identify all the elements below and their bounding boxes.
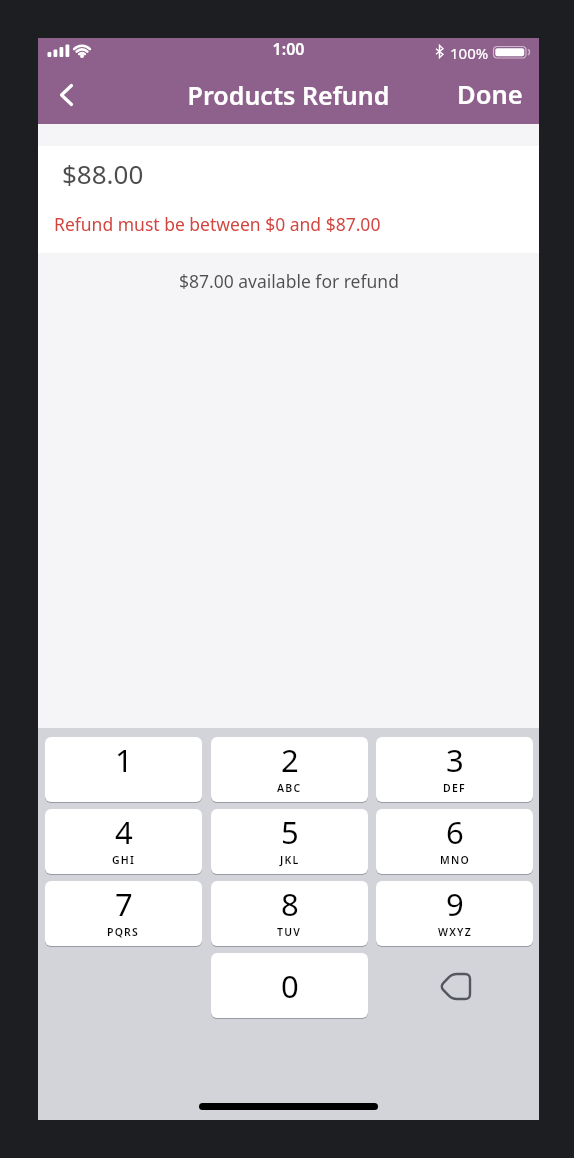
staticText: $87.00 available for refund — [179, 269, 399, 293]
button[interactable]: 8 — [211, 881, 368, 946]
staticText: PQRS — [107, 925, 140, 939]
button[interactable]: 9 — [376, 881, 533, 946]
staticText: 9 — [446, 883, 464, 925]
button[interactable]: 4 — [45, 809, 202, 874]
staticText: ABC — [277, 781, 302, 795]
staticText: DEF — [443, 781, 466, 795]
staticText: MNO — [440, 853, 470, 867]
button[interactable]: 1 — [45, 737, 202, 802]
staticText: 1:00 — [38, 38, 539, 60]
staticText: GHI — [112, 853, 136, 867]
staticText: $88.00 — [62, 156, 144, 191]
button[interactable] — [45, 73, 89, 117]
staticText: TUV — [277, 925, 302, 939]
staticText: 3 — [446, 739, 464, 781]
staticText: Refund must be between $0 and $87.00 — [54, 212, 381, 236]
staticText: 0 — [281, 965, 299, 1007]
staticText: 7 — [115, 883, 133, 925]
staticText: 100% — [450, 43, 489, 63]
staticText: WXYZ — [438, 925, 472, 939]
staticText: Products Refund — [38, 78, 539, 112]
staticText: 4 — [115, 811, 133, 853]
staticText: 6 — [446, 811, 464, 853]
staticText: JKL — [280, 853, 300, 867]
staticText: 2 — [281, 739, 299, 781]
button[interactable]: Done — [457, 72, 539, 116]
button[interactable]: 0 — [211, 953, 368, 1018]
button[interactable]: 6 — [376, 809, 533, 874]
button[interactable]: 5 — [211, 809, 368, 874]
button[interactable]: 3 — [376, 737, 533, 802]
staticText: 5 — [281, 811, 299, 853]
button[interactable] — [376, 953, 533, 1018]
staticText: Done — [457, 77, 523, 112]
staticText: 8 — [281, 883, 299, 925]
staticText: 1 — [115, 739, 133, 781]
button[interactable]: 7 — [45, 881, 202, 946]
button[interactable]: 2 — [211, 737, 368, 802]
